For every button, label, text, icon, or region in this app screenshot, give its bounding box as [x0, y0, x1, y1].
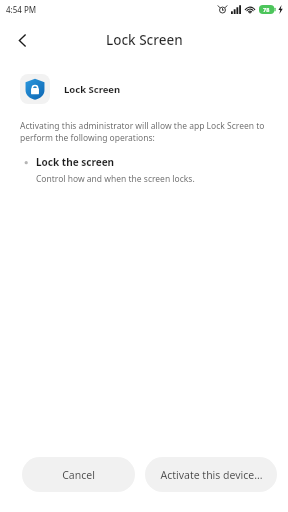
staticText: Lock the screen	[36, 155, 115, 169]
staticText: Lock Screen	[64, 83, 121, 96]
staticText: Cancel	[62, 468, 95, 482]
button[interactable]: Activate this device…	[145, 457, 277, 492]
staticText: 4:54 PM	[6, 4, 37, 15]
button[interactable]: Cancel	[22, 457, 135, 492]
button[interactable]: Back	[8, 26, 36, 54]
staticText: Activating this administrator will allow…	[20, 120, 268, 144]
staticText: Control how and when the screen locks.	[36, 173, 195, 185]
staticText: Activate this device…	[160, 468, 263, 482]
staticText: 78	[263, 6, 270, 13]
staticText: Lock Screen	[106, 31, 183, 49]
